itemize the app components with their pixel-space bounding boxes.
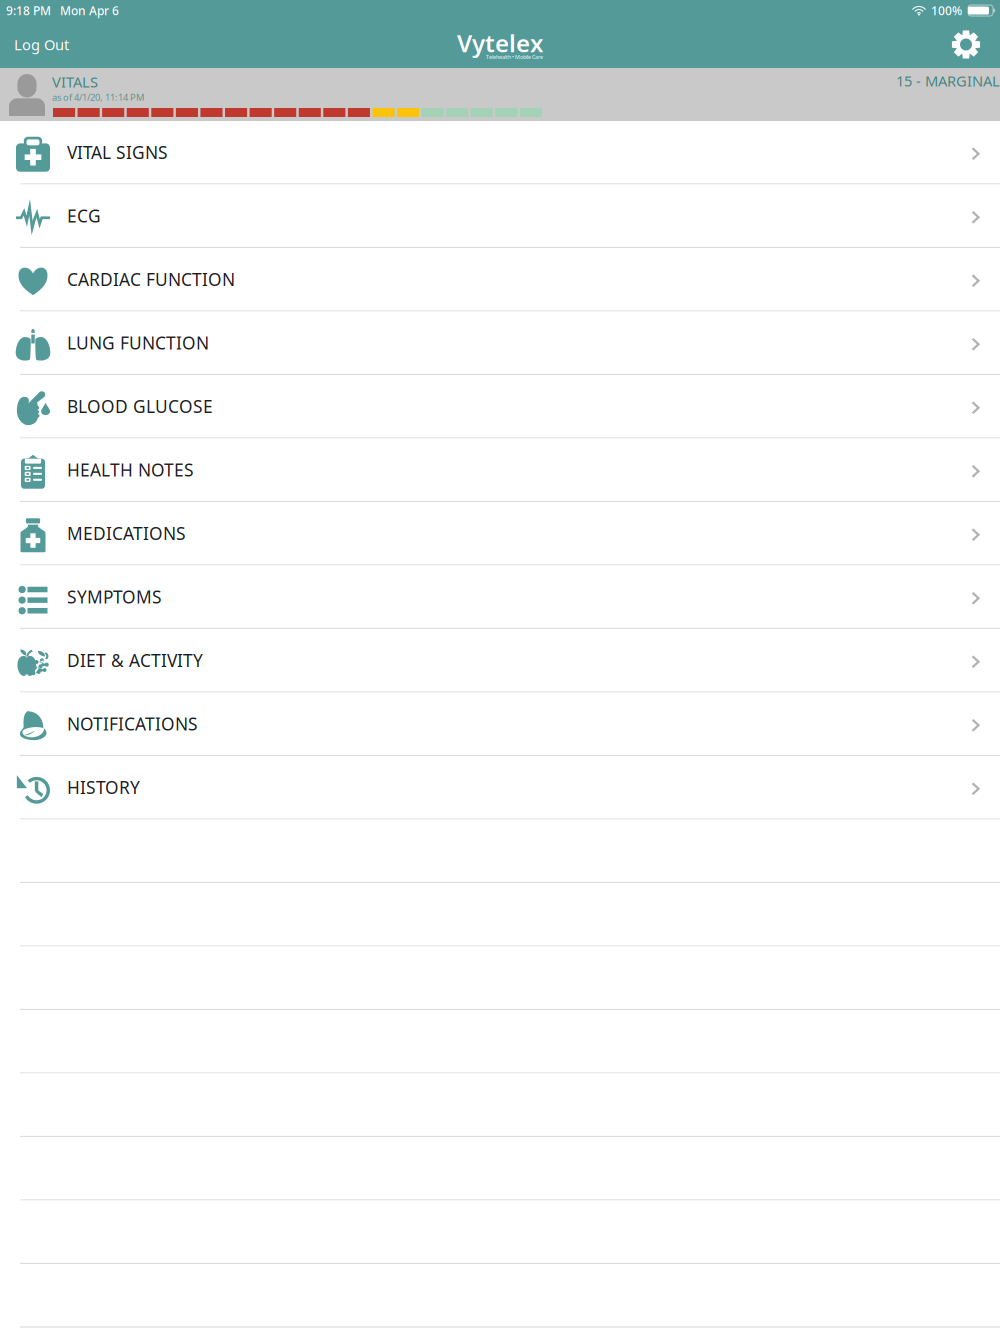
button[interactable]: HISTORY [0, 756, 1000, 819]
button[interactable]: Log Out [0, 21, 79, 68]
button[interactable]: ECG [0, 184, 1000, 248]
staticText: VITAL SIGNS [67, 141, 168, 164]
button[interactable]: MEDICATIONS [0, 502, 1000, 565]
button[interactable]: LUNG FUNCTION [0, 311, 1000, 375]
button[interactable]: Settings [951, 21, 1000, 68]
staticText: LUNG FUNCTION [67, 331, 209, 354]
staticText: Telehealth • Mobile Care [486, 53, 543, 61]
staticText: CARDIAC FUNCTION [67, 268, 235, 291]
staticText: 15 - MARGINAL [896, 71, 1000, 90]
button[interactable]: SYMPTOMS [0, 565, 1000, 629]
staticText: ECG [67, 204, 101, 227]
button[interactable]: CARDIAC FUNCTION [0, 248, 1000, 311]
button[interactable]: NOTIFICATIONS [0, 692, 1000, 756]
staticText: HISTORY [67, 776, 140, 799]
staticText: MEDICATIONS [67, 522, 186, 545]
staticText: 100% [931, 2, 962, 18]
staticText: 9:18 PM [6, 2, 51, 18]
button[interactable]: VITAL SIGNS [0, 121, 1000, 184]
staticText: as of 4/1/20, 11:14 PM [52, 91, 144, 103]
button[interactable]: HEALTH NOTES [0, 438, 1000, 502]
staticText: BLOOD GLUCOSE [67, 395, 213, 418]
staticText: Mon Apr 6 [60, 2, 119, 18]
staticText: VITALS [52, 72, 98, 91]
staticText: Log Out [14, 35, 69, 54]
staticText: SYMPTOMS [67, 585, 162, 608]
staticText: Vytelex [457, 27, 543, 59]
button[interactable]: DIET & ACTIVITY [0, 629, 1000, 692]
button[interactable]: BLOOD GLUCOSE [0, 375, 1000, 438]
staticText: NOTIFICATIONS [67, 712, 198, 735]
staticText: DIET & ACTIVITY [67, 649, 203, 672]
staticText: HEALTH NOTES [67, 458, 194, 481]
